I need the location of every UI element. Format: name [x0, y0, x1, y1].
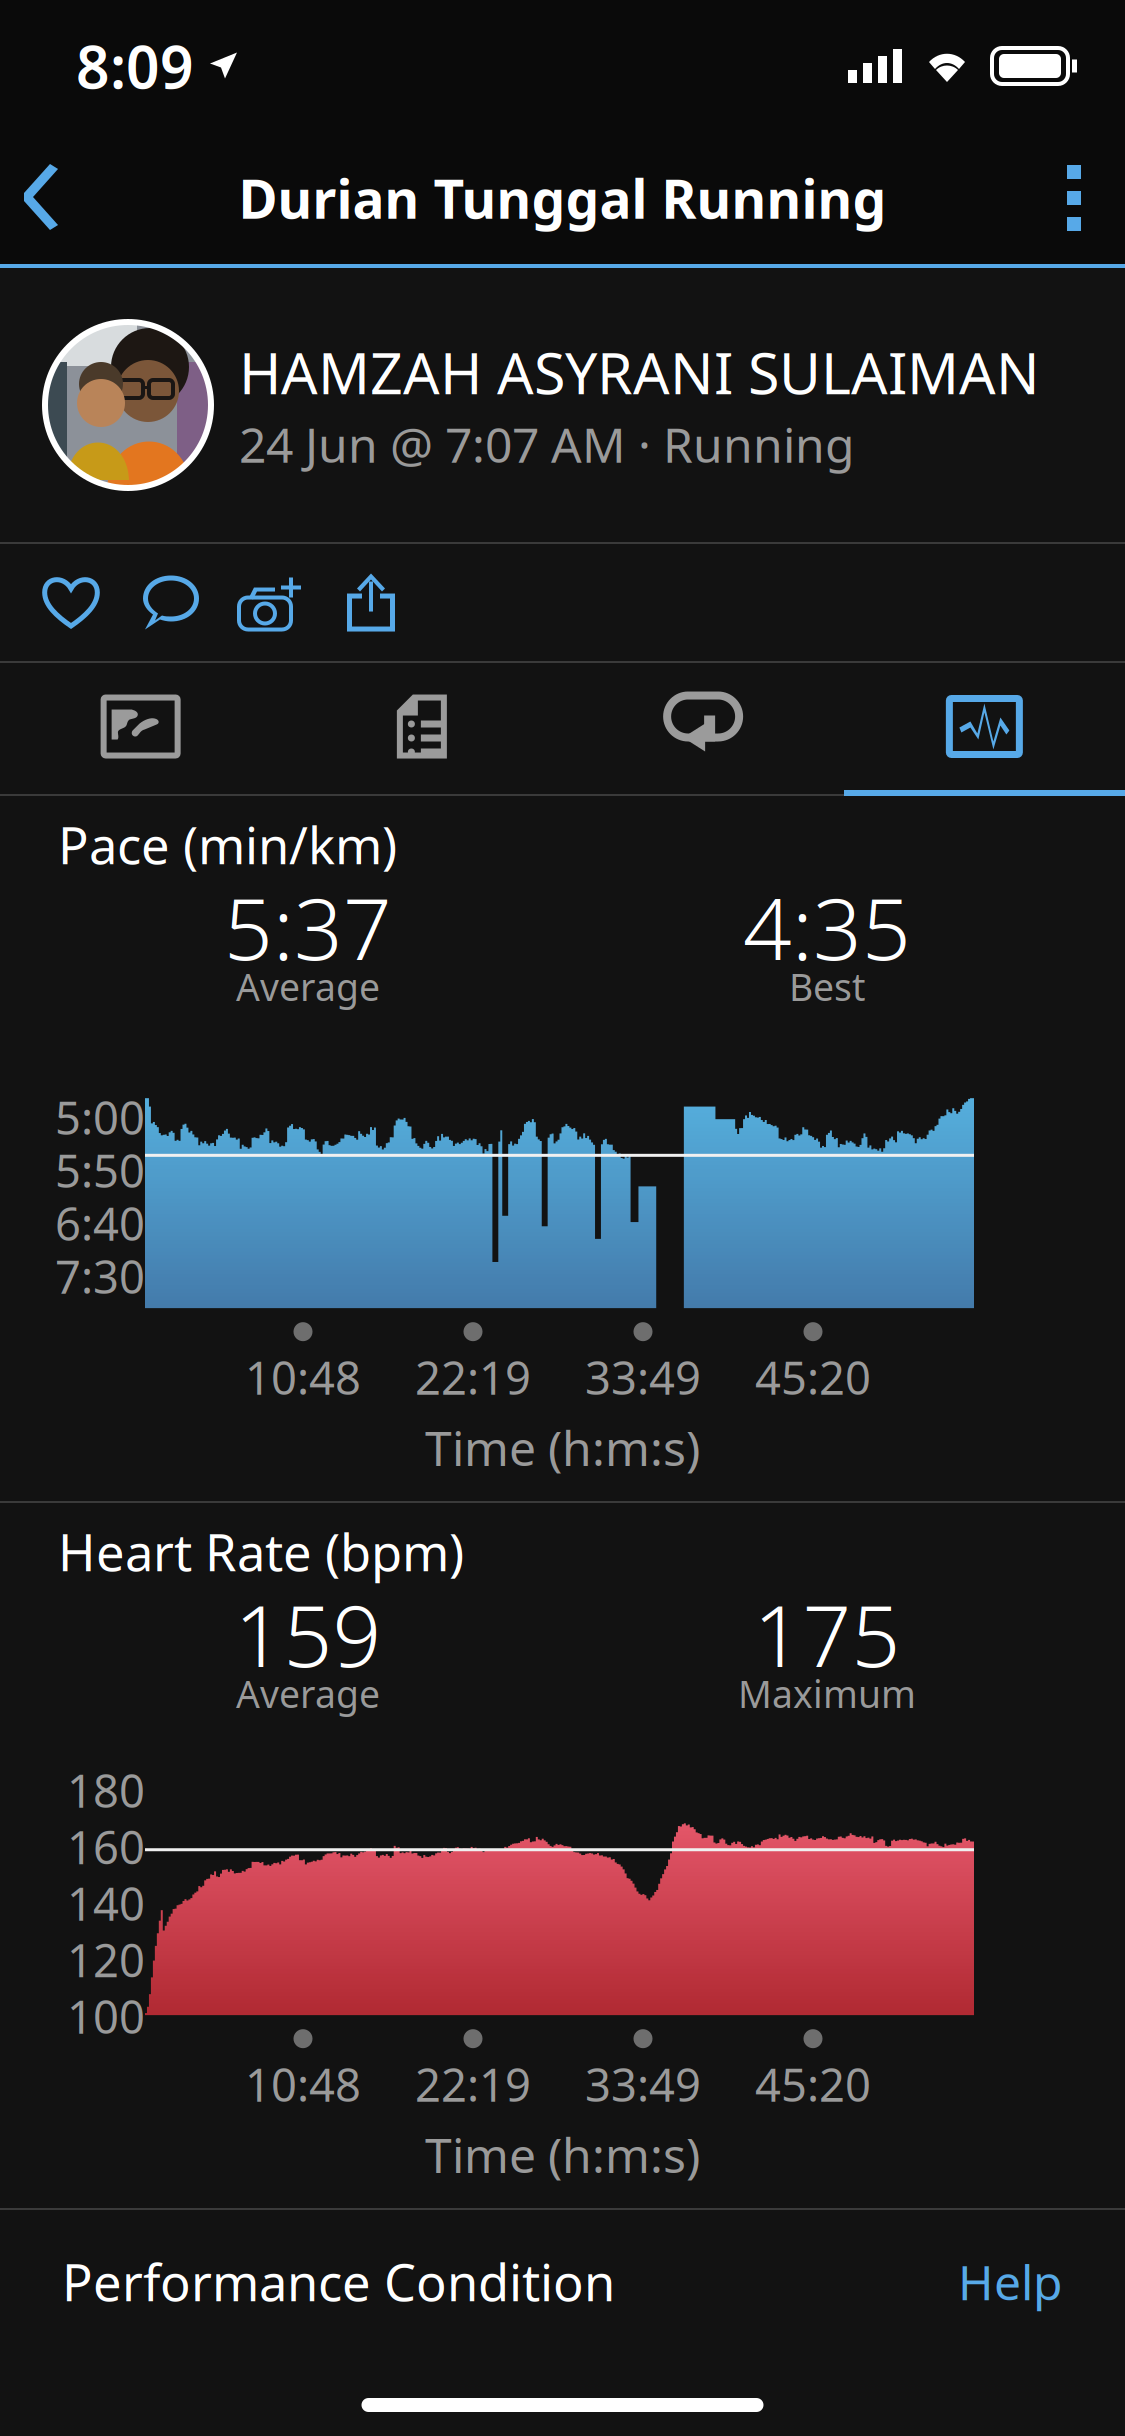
staticText: Best	[789, 962, 865, 1011]
button[interactable]: Back	[0, 132, 98, 264]
staticText: 10:48	[245, 1347, 361, 1407]
staticText: Durian Tunggal Running	[238, 163, 886, 233]
staticText: HAMZAH ASYRANI SULAIMAN	[239, 334, 1040, 410]
staticText: 45:20	[755, 2054, 871, 2114]
button[interactable]: Charts	[844, 663, 1125, 790]
button[interactable]: Share	[321, 544, 421, 661]
staticText: 10:48	[245, 2054, 361, 2114]
staticText: 33:49	[585, 2054, 701, 2114]
staticText: 5:37	[224, 870, 392, 984]
staticText: 140	[67, 1873, 145, 1933]
staticText: 160	[67, 1817, 145, 1877]
button[interactable]: Help	[958, 2250, 1063, 2313]
staticText: 22:19	[415, 2054, 531, 2114]
button[interactable]: More options	[1023, 132, 1125, 264]
staticText: Time (h:m:s)	[425, 1415, 700, 1479]
button[interactable]: Add photo	[221, 544, 321, 661]
staticText: Average	[236, 1669, 380, 1718]
button[interactable]: Laps	[562, 663, 844, 790]
staticText: Average	[236, 962, 380, 1011]
staticText: 180	[67, 1760, 145, 1820]
staticText: 33:49	[585, 1347, 701, 1407]
staticText: Performance Condition	[62, 2248, 615, 2315]
staticText: 22:19	[415, 1347, 531, 1407]
staticText: Pace (min/km)	[58, 811, 397, 878]
staticText: 175	[753, 1577, 900, 1691]
staticText: 100	[67, 1986, 145, 2046]
button[interactable]: Like	[21, 544, 121, 661]
staticText: 4:35	[743, 870, 911, 984]
staticText: Maximum	[738, 1669, 916, 1718]
staticText: 7:30	[55, 1246, 145, 1306]
staticText: 5:50	[55, 1140, 145, 1200]
staticText: Heart Rate (bpm)	[58, 1518, 464, 1585]
button[interactable]: Comment	[121, 544, 221, 661]
staticText: 120	[67, 1930, 145, 1990]
staticText: 24 Jun @ 7:07 AM · Running	[239, 412, 855, 476]
staticText: 5:00	[55, 1087, 145, 1147]
button[interactable]: Details	[281, 663, 562, 790]
staticText: 45:20	[755, 1347, 871, 1407]
staticText: 8:09	[76, 27, 194, 105]
button[interactable]: Map	[0, 663, 281, 790]
staticText: 6:40	[55, 1193, 145, 1253]
staticText: 159	[234, 1577, 381, 1691]
staticText: Time (h:m:s)	[425, 2122, 700, 2186]
staticText: Help	[958, 2250, 1063, 2313]
